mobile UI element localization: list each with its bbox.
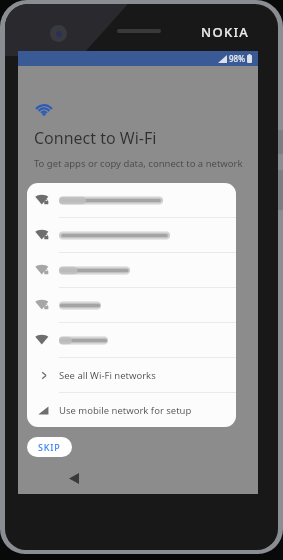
button[interactable]: Wi-Fi network (27, 323, 236, 357)
staticText: Use mobile network for setup (59, 404, 192, 417)
button[interactable]: Use mobile network for setup (27, 393, 236, 427)
staticText: 98% (229, 53, 245, 64)
button[interactable]: SKIP (27, 437, 72, 457)
button[interactable]: See all Wi-Fi networks (27, 358, 236, 392)
button[interactable]: Back (61, 465, 87, 491)
staticText: SKIP (38, 441, 61, 453)
staticText: Connect to Wi-Fi (34, 127, 157, 149)
button[interactable]: Wi-Fi network (27, 218, 236, 252)
button[interactable]: Wi-Fi network (27, 253, 236, 287)
button[interactable]: Wi-Fi network (27, 183, 236, 217)
staticText: To get apps or copy data, connect to a n… (34, 157, 243, 170)
staticText: NOKIA (201, 23, 250, 41)
button[interactable]: Wi-Fi network (27, 288, 236, 322)
staticText: See all Wi-Fi networks (59, 369, 156, 382)
